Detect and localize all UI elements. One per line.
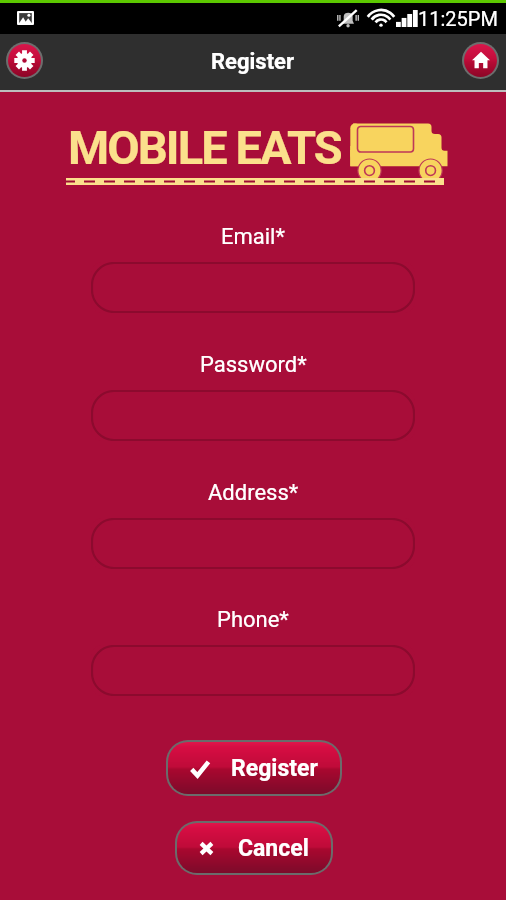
staticText: 11:25PM (418, 7, 498, 30)
staticText: MOBILE EATS (68, 120, 341, 175)
button[interactable]: Settings (8, 44, 41, 77)
staticText: Email* (221, 224, 285, 250)
staticText: Password* (200, 352, 307, 378)
button[interactable]: Cancel (177, 823, 331, 873)
staticText: Phone* (217, 607, 289, 633)
button[interactable] (91, 518, 415, 569)
staticText: Cancel (238, 835, 309, 862)
staticText: Address* (208, 480, 299, 506)
button[interactable] (91, 645, 415, 696)
button[interactable]: Home (464, 44, 497, 77)
button[interactable] (91, 390, 415, 441)
button[interactable] (91, 262, 415, 313)
staticText: Register (231, 755, 318, 782)
button[interactable]: Register (168, 742, 340, 794)
staticText: Register (211, 49, 295, 75)
